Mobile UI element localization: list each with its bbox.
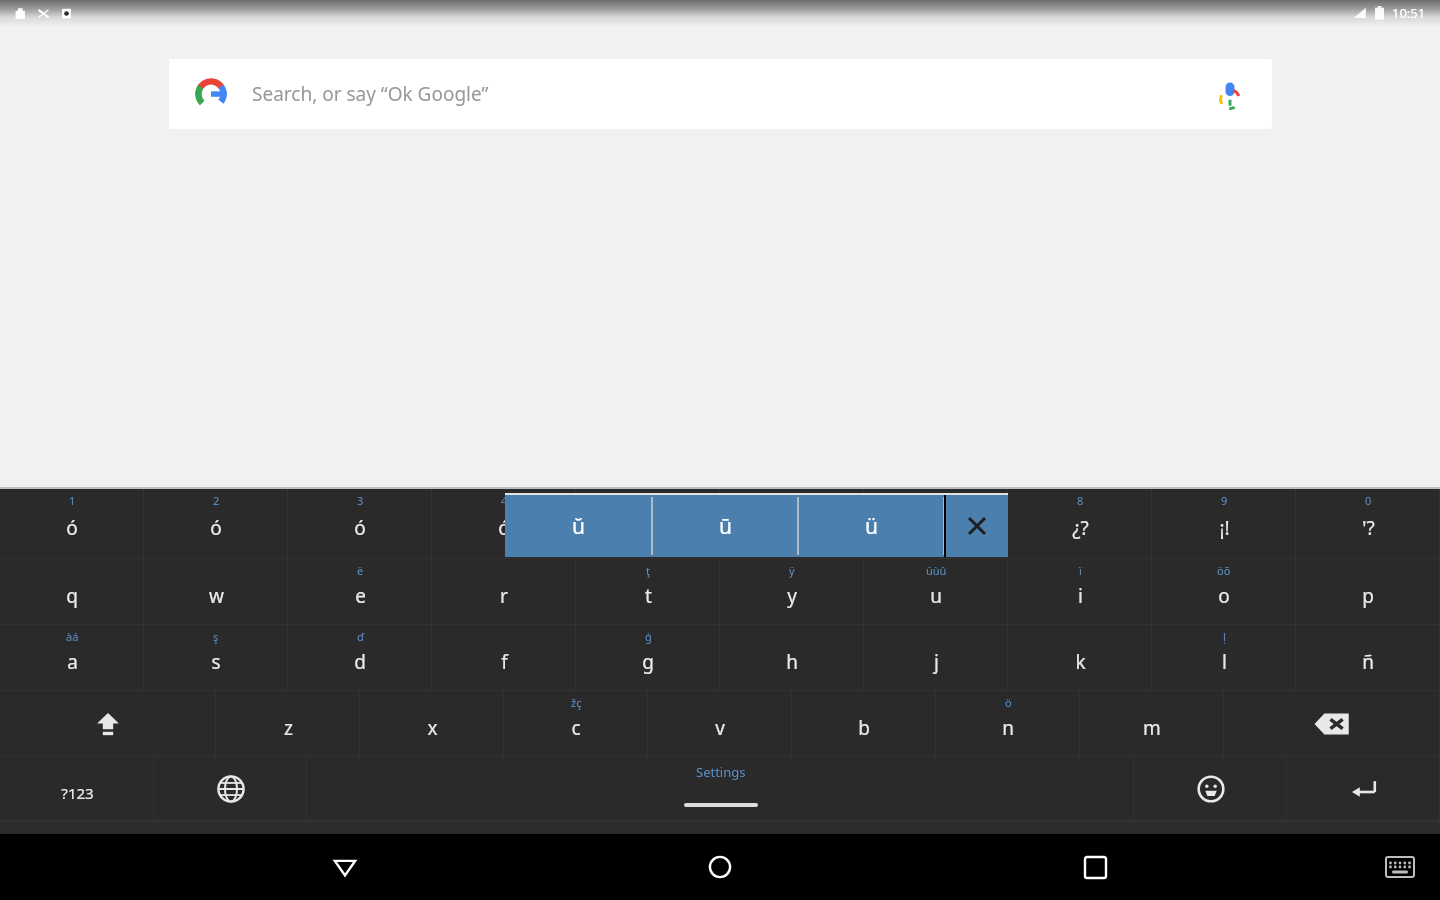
staticText: 9 [1221,493,1228,508]
button[interactable]: p [1296,559,1440,625]
button[interactable]: 8 [1008,489,1152,559]
staticText: 1 [69,493,76,508]
button[interactable]: Recents [1065,837,1125,897]
button[interactable]: Change language [154,757,307,821]
button[interactable]: ÿ [720,559,864,625]
button[interactable]: 4 [432,489,576,559]
staticText: i [1078,583,1083,609]
button[interactable]: Emoji [1134,757,1287,821]
staticText: n [1002,715,1014,741]
staticText: l [1222,649,1227,675]
staticText: üùû [926,563,947,578]
staticText: s [211,649,221,675]
button[interactable]: Close [946,495,1008,557]
staticText: 2 [213,493,220,508]
button[interactable]: f [432,625,576,691]
button[interactable]: j [864,625,1008,691]
button[interactable]: 6 [720,489,864,559]
button[interactable]: ñ [1296,625,1440,691]
staticText: w [209,583,224,609]
staticText: e [355,583,366,609]
staticText: ó [498,515,510,541]
button[interactable]: h [720,625,864,691]
button[interactable]: ö [936,691,1080,757]
button[interactable]: žç [504,691,648,757]
staticText: q [66,583,78,609]
button[interactable]: v [648,691,792,757]
staticText: m [1143,715,1161,741]
button[interactable]: m [1080,691,1224,757]
staticText: ó [210,515,222,541]
button[interactable]: w [144,559,288,625]
button[interactable]: ŭ [505,495,652,557]
staticText: ü [865,512,878,541]
staticText: ď [357,629,364,644]
button[interactable]: ë [288,559,432,625]
staticText: '? [1362,515,1375,541]
button[interactable]: Shift [0,691,216,757]
staticText: p [1362,583,1374,609]
staticText: 8 [1077,493,1084,508]
staticText: ó [786,515,798,541]
button[interactable]: ï [1008,559,1152,625]
staticText: k [1075,649,1086,675]
button[interactable]: Enter [1287,757,1440,821]
button[interactable]: 7 [864,489,1008,559]
staticText: ï [1079,563,1082,578]
button[interactable]: k [1008,625,1152,691]
staticText: ¿? [1072,515,1089,541]
button[interactable]: x [360,691,504,757]
button[interactable]: 0 [1296,489,1440,559]
staticText: o [1218,583,1230,609]
staticText: h [786,649,798,675]
staticText: a [67,649,78,675]
button[interactable]: ļ [1152,625,1296,691]
button[interactable]: 3 [288,489,432,559]
staticText: 6 [789,493,796,508]
button[interactable]: 1 [0,489,144,559]
button[interactable]: Search, or say “Ok Google” [169,59,1272,129]
button[interactable]: ?123 [0,757,154,821]
staticText: ë [357,563,364,578]
button[interactable]: Space [307,757,1134,821]
button[interactable]: 5 [576,489,720,559]
button[interactable]: b [792,691,936,757]
staticText: 5 [645,493,652,508]
staticText: ÿ [789,563,795,578]
button[interactable]: z [216,691,360,757]
button[interactable]: Home [690,837,750,897]
button[interactable]: ģ [576,625,720,691]
staticText: ŭ [572,512,585,541]
button[interactable]: üùû [864,559,1008,625]
button[interactable]: öõ [1152,559,1296,625]
button[interactable]: ď [288,625,432,691]
button[interactable]: 9 [1152,489,1296,559]
staticText: ó [642,515,654,541]
button[interactable]: q [0,559,144,625]
button[interactable]: Backspace [1224,691,1440,757]
staticText: u [930,583,942,609]
staticText: g [642,649,654,675]
button[interactable]: 2 [144,489,288,559]
staticText: ?123 [61,783,94,803]
staticText: z [284,715,293,741]
staticText: àá [66,629,79,644]
staticText: ļ [1223,629,1226,644]
staticText: t [645,583,652,609]
staticText: ó [66,515,78,541]
button[interactable]: Voice search [1204,68,1256,120]
button[interactable]: ş [144,625,288,691]
button[interactable]: ü [798,495,944,557]
staticText: b [858,715,870,741]
staticText: ¡! [1219,515,1230,541]
button[interactable]: r [432,559,576,625]
staticText: d [354,649,366,675]
button[interactable]: Hide keyboard [315,837,375,897]
button[interactable]: àá [0,625,144,691]
button[interactable]: ū [652,495,798,557]
staticText: v [715,715,725,741]
button[interactable]: ţ [576,559,720,625]
button[interactable]: Switch keyboard [1378,845,1422,889]
staticText: Settings [696,763,746,781]
